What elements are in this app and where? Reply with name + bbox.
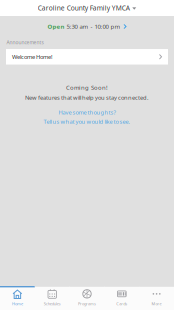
button[interactable]: More (139, 286, 174, 310)
staticText: More (152, 301, 162, 306)
button[interactable]: Cards (104, 286, 139, 310)
button[interactable]: Caroline County Family YMCA (0, 0, 174, 16)
staticText: Welcome Home! (12, 53, 53, 61)
staticText: Coming Soon! (66, 83, 108, 91)
button[interactable]: Have some thoughts? (43, 108, 130, 125)
staticText: Caroline County Family YMCA (38, 3, 130, 13)
staticText: Cards (116, 301, 127, 306)
staticText: Tell us what you would like to see. (43, 118, 130, 125)
button[interactable]: Welcome Home! (6, 49, 168, 64)
button[interactable]: Home (0, 286, 35, 310)
staticText: New features that will help you stay con… (25, 93, 149, 101)
staticText: Programs (78, 301, 96, 306)
staticText: 5:30 am - 10:00 pm (64, 22, 120, 31)
button[interactable]: Schedules (35, 286, 70, 310)
button[interactable]: Open (0, 20, 174, 33)
staticText: Have some thoughts? (58, 108, 115, 116)
staticText: Open (47, 22, 64, 31)
staticText: Home (12, 301, 23, 306)
staticText: Announcements (6, 39, 43, 45)
staticText: Schedules (44, 301, 61, 306)
button[interactable]: Programs (70, 286, 104, 310)
